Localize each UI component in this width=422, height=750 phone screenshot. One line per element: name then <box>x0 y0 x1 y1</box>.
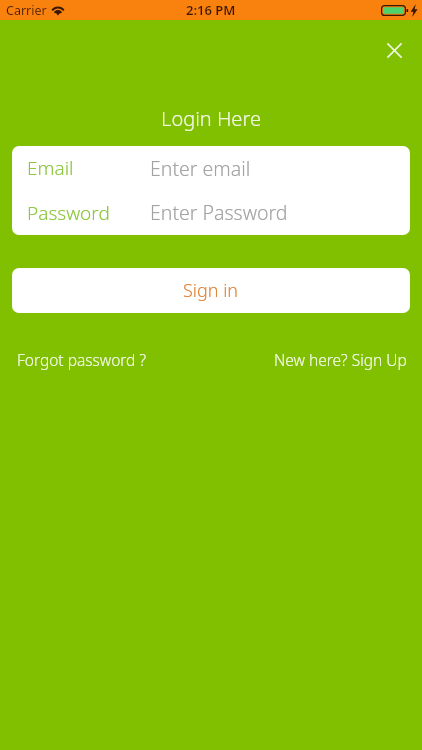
staticText: Enter email <box>150 155 251 182</box>
button[interactable]: Password <box>12 190 410 235</box>
staticText: New here? Sign Up <box>274 349 407 370</box>
staticText: Login Here <box>0 105 422 132</box>
staticText: Enter Password <box>150 199 288 226</box>
button[interactable]: Sign in <box>12 268 410 313</box>
staticText: Carrier <box>6 2 47 19</box>
staticText: Password <box>27 200 150 226</box>
button[interactable]: Close <box>378 34 410 66</box>
button[interactable]: New here? Sign Up <box>274 349 407 370</box>
staticText: 2:16 PM <box>186 1 236 19</box>
staticText: Sign in <box>183 278 239 303</box>
button[interactable]: Email <box>12 146 410 190</box>
button[interactable]: Forgot password ? <box>17 349 146 370</box>
staticText: Email <box>27 155 150 181</box>
staticText: Forgot password ? <box>17 349 146 370</box>
